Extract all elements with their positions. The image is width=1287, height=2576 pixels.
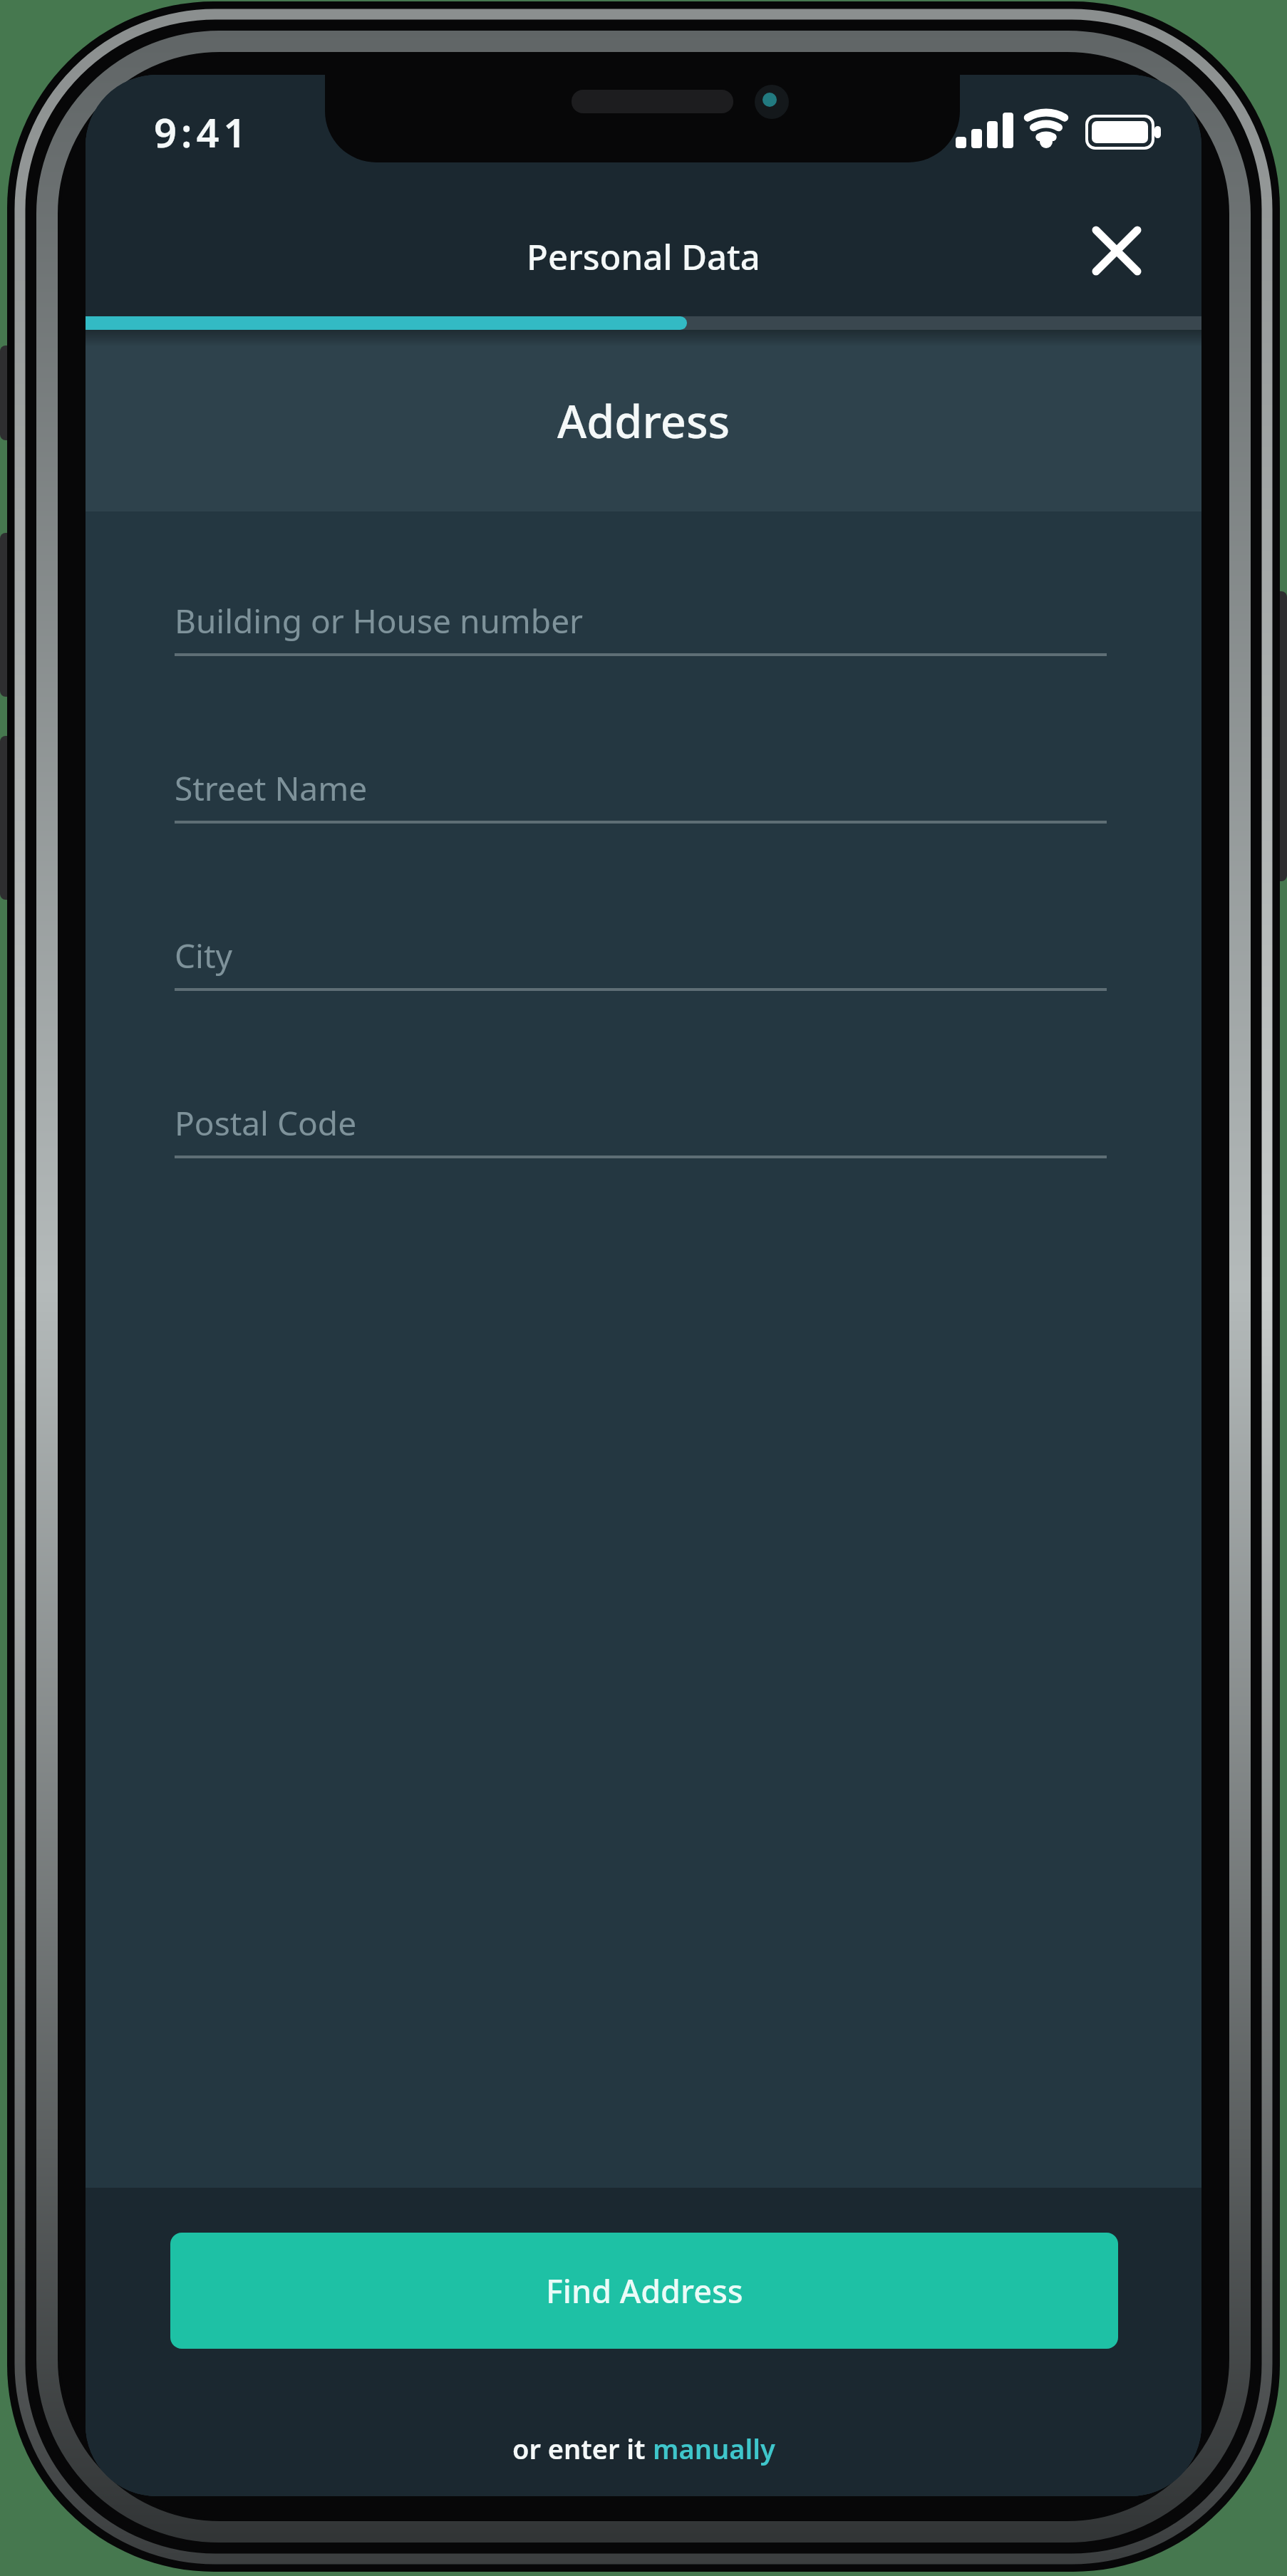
staticText: Building or House number bbox=[175, 598, 584, 643]
staticText: Personal Data bbox=[527, 233, 760, 281]
button[interactable] bbox=[1074, 208, 1159, 294]
staticText: or enter it bbox=[512, 2430, 653, 2467]
button[interactable]: or enter it bbox=[512, 2430, 775, 2467]
staticText: Find Address bbox=[546, 2269, 743, 2312]
button[interactable]: Find Address bbox=[170, 2233, 1118, 2349]
staticText: Street Name bbox=[175, 766, 368, 811]
button[interactable]: Street Name bbox=[175, 766, 1107, 824]
staticText: manually bbox=[653, 2430, 775, 2467]
staticText: City bbox=[175, 933, 233, 978]
staticText: Address bbox=[557, 390, 730, 452]
button[interactable]: City bbox=[175, 933, 1107, 991]
staticText: Postal Code bbox=[175, 1101, 357, 1146]
staticText: 9:41 bbox=[154, 105, 251, 159]
button[interactable]: Postal Code bbox=[175, 1101, 1107, 1158]
button[interactable]: Building or House number bbox=[175, 598, 1107, 656]
